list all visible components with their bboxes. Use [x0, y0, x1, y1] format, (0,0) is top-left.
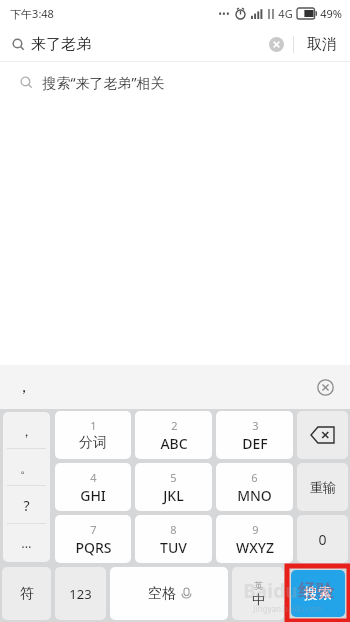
button[interactable]: ? — [3, 486, 50, 524]
staticText: 1 — [90, 418, 97, 433]
staticText: ABC — [160, 434, 188, 453]
button[interactable]: Clear — [259, 27, 293, 61]
staticText: 7 — [90, 522, 97, 537]
staticText: ••• — [218, 7, 230, 21]
staticText: 空格 — [148, 585, 176, 603]
staticText: MNO — [237, 486, 272, 505]
staticText: 9 — [252, 522, 259, 537]
button[interactable]: 取消 — [294, 26, 350, 62]
button[interactable]: 重输 — [297, 463, 348, 511]
button[interactable]: 搜索“来了老弟”相关 — [0, 62, 350, 102]
button[interactable]: 9 — [216, 515, 293, 563]
staticText: WXYZ — [236, 538, 274, 557]
button[interactable]: 123 — [55, 567, 106, 620]
button[interactable]: 符 — [2, 567, 51, 620]
staticText: 4G — [278, 6, 293, 21]
button[interactable]: 搜索 — [291, 570, 345, 617]
button[interactable]: 0 — [297, 515, 348, 563]
button[interactable]: ， — [3, 412, 50, 449]
button[interactable]: Backspace — [297, 411, 348, 459]
staticText: 49% — [320, 6, 342, 21]
staticText: GHI — [80, 486, 106, 505]
button[interactable]: 7 — [55, 515, 131, 563]
staticText: 搜索“来了老弟”相关 — [42, 73, 165, 92]
staticText: Jingyan.baidu.com — [253, 603, 323, 614]
staticText: 中 — [252, 591, 265, 607]
staticText: 英 — [254, 580, 263, 591]
button[interactable]: 1 — [55, 411, 131, 459]
staticText: JKL — [163, 486, 184, 505]
button[interactable]: 6 — [216, 463, 293, 511]
staticText: 4 — [90, 470, 97, 485]
staticText: PQRS — [75, 538, 112, 557]
button[interactable]: Close keyboard — [312, 374, 338, 400]
button[interactable]: 2 — [135, 411, 212, 459]
button[interactable]: 8 — [135, 515, 212, 563]
other: Backspace — [311, 427, 334, 443]
staticText: … — [21, 534, 32, 552]
button[interactable]: 3 — [216, 411, 293, 459]
staticText: 5 — [170, 470, 177, 485]
staticText: 2 — [171, 418, 178, 433]
staticText: 搜索 — [304, 585, 332, 603]
staticText: 经验 — [298, 580, 334, 603]
staticText: 取消 — [307, 35, 337, 54]
staticText: 6 — [251, 470, 258, 485]
button[interactable]: … — [3, 524, 50, 562]
staticText: 。 — [20, 460, 33, 476]
button[interactable]: 空格 — [110, 567, 228, 620]
button[interactable]: 来了老弟 — [0, 26, 259, 62]
staticText: 123 — [69, 585, 92, 603]
staticText: DEF — [242, 434, 268, 453]
staticText: TUV — [160, 538, 187, 557]
staticText: 0 — [318, 530, 327, 549]
button[interactable]: 5 — [135, 463, 212, 511]
button[interactable]: 4 — [55, 463, 131, 511]
staticText: 分词 — [79, 434, 107, 452]
staticText: Bai — [243, 578, 273, 604]
staticText: 符 — [20, 585, 34, 603]
staticText: ， — [16, 377, 32, 397]
staticText: 重输 — [310, 479, 336, 495]
button[interactable]: 英 — [232, 567, 284, 620]
staticText: 3 — [252, 418, 259, 433]
staticText: ， — [20, 423, 33, 439]
staticText: 下午3:48 — [10, 6, 54, 21]
staticText: ? — [23, 496, 30, 515]
staticText: 来了老弟 — [31, 35, 91, 54]
button[interactable]: 。 — [3, 449, 50, 486]
staticText: du — [273, 578, 298, 604]
staticText: 8 — [170, 522, 177, 537]
